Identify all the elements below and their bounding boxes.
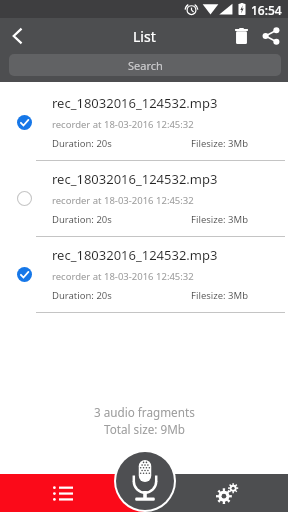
staticText: rec_18032016_124532.mp3: [52, 94, 218, 112]
button[interactable]: Recordings list: [0, 474, 144, 512]
staticText: 16:54: [251, 2, 282, 18]
staticText: Filesize: 3Mb: [112, 137, 248, 150]
staticText: Total size: 9Mb: [104, 421, 185, 437]
button[interactable]: Back: [0, 18, 34, 54]
staticText: Search: [128, 58, 163, 73]
button[interactable]: Search: [9, 54, 281, 76]
button[interactable]: rec_18032016_124532.mp3: [0, 237, 288, 312]
button[interactable]: Settings: [144, 474, 288, 512]
button[interactable]: Delete: [229, 24, 253, 48]
staticText: rec_18032016_124532.mp3: [52, 246, 218, 264]
button[interactable]: Record: [116, 452, 174, 510]
staticText: 3 audio fragments: [94, 404, 195, 420]
staticText: Duration: 20s: [52, 213, 112, 226]
staticText: recorder at 18-03-2016 12:45:32: [52, 118, 194, 131]
staticText: Duration: 20s: [52, 289, 112, 302]
button[interactable]: rec_18032016_124532.mp3: [0, 161, 288, 236]
staticText: recorder at 18-03-2016 12:45:32: [52, 194, 194, 207]
staticText: Filesize: 3Mb: [112, 213, 248, 226]
button[interactable]: rec_18032016_124532.mp3: [0, 85, 288, 160]
staticText: Duration: 20s: [52, 137, 112, 150]
staticText: Filesize: 3Mb: [112, 289, 248, 302]
staticText: rec_18032016_124532.mp3: [52, 170, 218, 188]
staticText: recorder at 18-03-2016 12:45:32: [52, 270, 194, 283]
button[interactable]: Share: [259, 24, 283, 48]
staticText: List: [133, 27, 156, 46]
